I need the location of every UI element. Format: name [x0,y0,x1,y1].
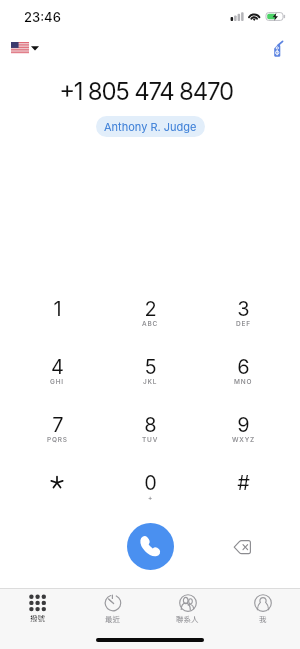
button[interactable]: 撥號 [0,593,75,623]
button[interactable]: # [209,471,277,519]
button[interactable]: 我 [225,593,300,624]
button[interactable]: 3 [209,297,277,345]
staticText: MNO [234,378,253,386]
staticText: 7 [52,413,64,437]
button[interactable]: 聯系人 [150,593,225,624]
button[interactable]: 1 [23,297,91,345]
button[interactable] [0,35,50,59]
button[interactable]: Offers [269,38,291,60]
button[interactable]: Backspace [233,538,255,556]
staticText: 2 [144,297,157,321]
button[interactable]: 5 [116,355,184,403]
staticText: 我 [259,613,267,624]
button[interactable]: 4 [23,355,91,403]
staticText: PQRS [47,436,68,444]
staticText: 0 [144,471,157,495]
staticText: ABC [142,320,159,328]
button[interactable]: 最近 [75,593,150,624]
button[interactable] [23,471,91,519]
staticText: + [148,494,154,502]
button[interactable]: Call [127,523,174,570]
staticText: 3 [237,297,250,321]
button[interactable]: 6 [209,355,277,403]
staticText: DEF [236,320,251,328]
staticText: 最近 [105,613,120,624]
staticText: 1 [53,297,62,321]
staticText: JKL [143,378,158,386]
button[interactable]: 9 [209,413,277,461]
staticText: 9 [237,413,250,437]
staticText: 23:46 [24,9,61,25]
staticText: 4 [51,355,64,379]
staticText: 8 [144,413,157,437]
staticText: # [237,471,250,495]
button[interactable]: Anthony R. Judge [96,116,205,137]
staticText: TUV [142,436,159,444]
button[interactable]: 7 [23,413,91,461]
staticText: GHI [50,378,64,386]
button[interactable]: 0 [116,471,184,519]
staticText: 撥號 [30,612,45,623]
staticText: Anthony R. Judge [104,120,197,133]
button[interactable]: 8 [116,413,184,461]
button[interactable]: 2 [116,297,184,345]
staticText: 聯系人 [176,613,199,624]
staticText: 6 [237,355,250,379]
staticText: WXYZ [232,436,255,444]
staticText: 5 [144,355,157,379]
staticText: +1 805 474 8470 [59,77,233,106]
